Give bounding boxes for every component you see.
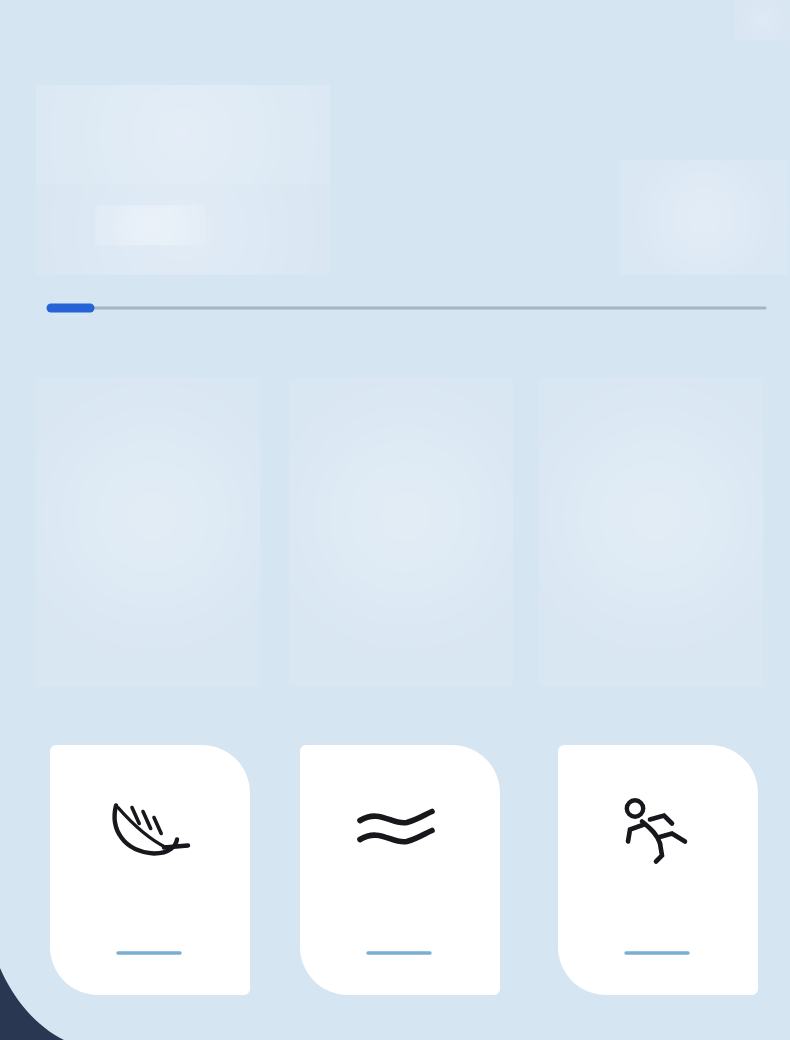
button[interactable]: Run xyxy=(558,745,758,995)
button[interactable]: Waves xyxy=(300,745,500,995)
button[interactable]: Leaf xyxy=(50,745,250,995)
